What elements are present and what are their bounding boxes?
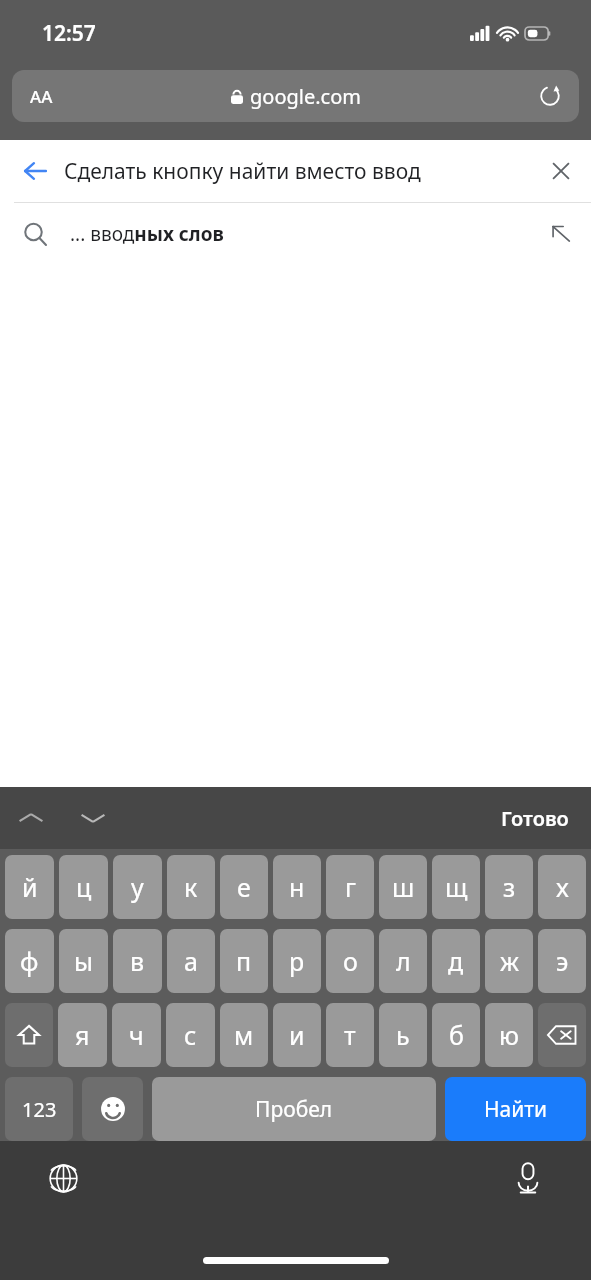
button[interactable]: Готово <box>501 805 569 832</box>
button[interactable]: щ <box>432 855 480 919</box>
button[interactable]: о <box>326 929 374 993</box>
staticText: у <box>131 870 144 904</box>
button[interactable]: Previous field <box>0 787 62 849</box>
staticText: з <box>503 870 516 904</box>
staticText: р <box>289 944 305 978</box>
staticText: AA <box>30 85 53 108</box>
staticText: Найти <box>484 1095 548 1124</box>
button[interactable]: ф <box>5 929 54 993</box>
staticText: с <box>184 1018 197 1052</box>
button[interactable]: п <box>220 929 268 993</box>
staticText: щ <box>445 870 468 904</box>
button[interactable]: ... вводных слов <box>0 203 591 265</box>
button[interactable]: Backspace <box>538 1003 586 1067</box>
button[interactable]: AA <box>12 70 579 122</box>
staticText: и <box>289 1018 305 1052</box>
staticText: ш <box>392 870 415 904</box>
button[interactable]: з <box>485 855 533 919</box>
button[interactable]: к <box>167 855 215 919</box>
button[interactable]: г <box>326 855 374 919</box>
button[interactable]: я <box>58 1003 107 1067</box>
staticText: х <box>556 870 569 904</box>
button[interactable]: й <box>5 855 54 919</box>
button[interactable]: Change keyboard language <box>38 1153 88 1203</box>
button[interactable]: ц <box>59 855 108 919</box>
staticText: н <box>289 870 305 904</box>
staticText: Готово <box>501 805 569 832</box>
staticText: ь <box>396 1018 410 1052</box>
button[interactable]: э <box>538 929 586 993</box>
staticText: д <box>448 944 464 978</box>
button[interactable]: Insert suggestion <box>531 223 591 245</box>
staticText: ц <box>76 870 92 904</box>
staticText: Сделать кнопку найти вместо ввод <box>64 157 421 186</box>
button[interactable]: ч <box>112 1003 161 1067</box>
button[interactable]: Shift <box>5 1003 53 1067</box>
staticText: э <box>556 944 569 978</box>
button[interactable]: Clear <box>531 159 591 183</box>
button[interactable]: ю <box>485 1003 533 1067</box>
staticText: ф <box>20 944 39 978</box>
staticText: ... вводных слов <box>70 221 224 247</box>
staticText: а <box>184 944 198 978</box>
button[interactable]: н <box>273 855 321 919</box>
button[interactable]: б <box>432 1003 480 1067</box>
staticText: ч <box>129 1018 144 1052</box>
staticText: 12:57 <box>42 19 96 48</box>
button[interactable]: ы <box>59 929 108 993</box>
staticText: б <box>449 1018 464 1052</box>
button[interactable]: а <box>167 929 215 993</box>
button[interactable]: д <box>432 929 480 993</box>
button[interactable]: 123 <box>5 1077 73 1141</box>
button[interactable]: м <box>220 1003 268 1067</box>
button[interactable]: л <box>379 929 427 993</box>
staticText: я <box>75 1018 90 1052</box>
staticText: ы <box>74 944 93 978</box>
button[interactable]: х <box>538 855 586 919</box>
staticText: л <box>396 944 411 978</box>
button[interactable]: ж <box>485 929 533 993</box>
button[interactable]: у <box>113 855 162 919</box>
staticText: г <box>345 870 356 904</box>
staticText: м <box>234 1018 254 1052</box>
staticText: т <box>344 1018 356 1052</box>
button[interactable]: Next field <box>62 787 124 849</box>
button[interactable]: Найти <box>445 1077 586 1141</box>
button[interactable]: и <box>273 1003 321 1067</box>
staticText: й <box>22 870 38 904</box>
button[interactable]: Пробел <box>152 1077 436 1141</box>
staticText: ю <box>499 1018 519 1052</box>
button[interactable]: е <box>220 855 268 919</box>
staticText: е <box>237 870 251 904</box>
button[interactable]: Voice input <box>503 1153 553 1203</box>
button[interactable]: р <box>273 929 321 993</box>
button[interactable]: Reload <box>535 81 565 111</box>
button[interactable]: ш <box>379 855 427 919</box>
button[interactable]: ь <box>379 1003 427 1067</box>
button[interactable]: Emoji <box>82 1077 143 1141</box>
staticText: о <box>343 944 358 978</box>
staticText: 123 <box>22 1096 57 1123</box>
button[interactable]: с <box>166 1003 215 1067</box>
staticText: Пробел <box>255 1095 333 1124</box>
staticText: к <box>184 870 198 904</box>
button[interactable]: Back <box>0 158 70 184</box>
staticText: в <box>130 944 145 978</box>
staticText: п <box>236 944 252 978</box>
staticText: google.com <box>250 83 361 110</box>
button[interactable]: в <box>113 929 162 993</box>
staticText: ж <box>500 944 519 978</box>
button[interactable]: т <box>326 1003 374 1067</box>
